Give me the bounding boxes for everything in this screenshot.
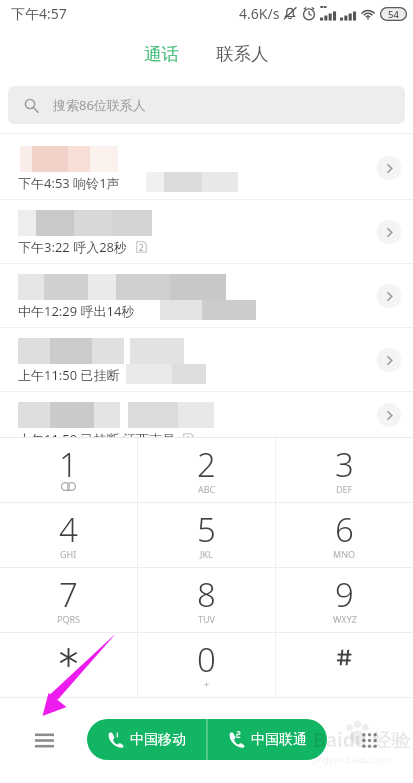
button[interactable]: 7 xyxy=(0,568,137,632)
button[interactable]: 3 xyxy=(276,438,413,502)
button[interactable]: 中国联通 xyxy=(208,719,327,760)
staticText: 4.6K/s xyxy=(239,4,280,23)
staticText: jingyan.baidu.com xyxy=(313,753,391,765)
button[interactable]: 1 xyxy=(0,438,137,502)
staticText: WXYZ xyxy=(333,613,357,625)
button[interactable]: Call details xyxy=(377,156,401,180)
staticText: 4 xyxy=(59,507,78,552)
button[interactable]: 6 xyxy=(276,503,413,567)
staticText: 中午12:29 呼出14秒 xyxy=(18,302,135,320)
staticText: 1 xyxy=(186,434,191,445)
staticText: Baidu 经验 xyxy=(313,727,410,753)
staticText: 上午11:50 已挂断 江西南昌 xyxy=(18,430,175,448)
button[interactable]: 0 xyxy=(138,633,275,697)
button[interactable]: 中国移动 xyxy=(87,719,206,760)
staticText: 6 xyxy=(335,507,354,552)
button[interactable] xyxy=(276,633,413,697)
staticText: 中国联通 xyxy=(251,731,307,749)
button[interactable]: 9 xyxy=(276,568,413,632)
staticText: TUV xyxy=(198,613,215,625)
staticText: 0 xyxy=(197,637,216,682)
staticText: 联系人 xyxy=(216,43,269,65)
button[interactable]: Call details xyxy=(377,220,401,244)
staticText: GHI xyxy=(60,548,77,560)
staticText: 3 xyxy=(335,442,354,487)
staticText: 搜索86位联系人 xyxy=(53,96,146,114)
button[interactable]: 上午11:50 已挂断 xyxy=(0,328,413,392)
staticText: 1 xyxy=(59,442,78,487)
staticText: 通话 xyxy=(144,43,179,65)
staticText: MNO xyxy=(333,548,356,560)
staticText: 中国移动 xyxy=(130,731,186,749)
button[interactable]: 通话 xyxy=(130,36,193,72)
staticText: 下午4:53 响铃1声 xyxy=(18,174,120,192)
staticText: DEF xyxy=(336,483,353,495)
button[interactable]: 下午4:53 响铃1声 xyxy=(0,136,413,200)
staticText: + xyxy=(204,678,210,690)
button[interactable]: Call details xyxy=(377,348,401,372)
button[interactable]: 2 xyxy=(138,438,275,502)
staticText: 下午3:22 呼入28秒 xyxy=(18,238,128,256)
staticText: ABC xyxy=(198,483,216,495)
staticText: 54 xyxy=(388,8,399,21)
button[interactable]: Menu xyxy=(24,720,64,760)
button[interactable]: 4 xyxy=(0,503,137,567)
button[interactable]: Keypad xyxy=(350,721,388,759)
button[interactable]: 联系人 xyxy=(202,36,283,72)
button[interactable]: 下午3:22 呼入28秒 xyxy=(0,200,413,264)
staticText: 8 xyxy=(197,572,216,617)
staticText: 7 xyxy=(59,572,78,617)
button[interactable] xyxy=(0,633,137,697)
button[interactable]: 上午11:50 已挂断 江西南昌 xyxy=(0,392,413,437)
staticText: 5 xyxy=(197,507,216,552)
staticText: 2 xyxy=(139,242,144,253)
button[interactable]: Call details xyxy=(377,284,401,308)
staticText: 2 xyxy=(197,442,216,487)
button[interactable]: 中午12:29 呼出14秒 xyxy=(0,264,413,328)
staticText: 上午11:50 已挂断 xyxy=(18,366,120,384)
staticText: 9 xyxy=(335,572,354,617)
button[interactable]: 5 xyxy=(138,503,275,567)
staticText: PQRS xyxy=(57,613,81,625)
button[interactable]: Call details xyxy=(377,403,401,427)
staticText: JKL xyxy=(200,548,213,560)
staticText: 下午4:57 xyxy=(11,4,67,23)
button[interactable]: 搜索86位联系人 xyxy=(8,86,405,124)
button[interactable]: 8 xyxy=(138,568,275,632)
